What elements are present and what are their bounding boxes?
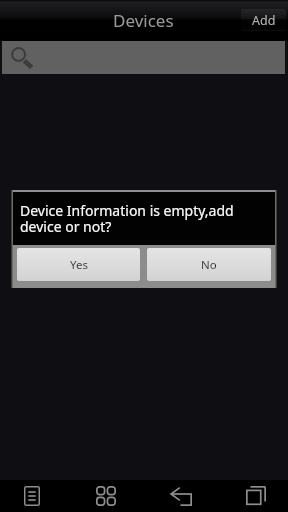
staticText: Add (252, 12, 276, 29)
button[interactable]: Search (2, 41, 285, 74)
staticText: Device Information is empty,add device o… (20, 201, 242, 236)
button[interactable]: Add (241, 9, 286, 31)
button[interactable]: Apps (72, 480, 144, 512)
button[interactable]: Yes (17, 248, 140, 281)
staticText: Yes (70, 257, 88, 273)
button[interactable]: Menu (0, 480, 72, 512)
button[interactable]: No (147, 248, 271, 281)
button[interactable]: Back (144, 480, 216, 512)
staticText: No (201, 257, 217, 273)
button[interactable]: Recent apps (216, 480, 288, 512)
staticText: Devices (113, 9, 174, 32)
